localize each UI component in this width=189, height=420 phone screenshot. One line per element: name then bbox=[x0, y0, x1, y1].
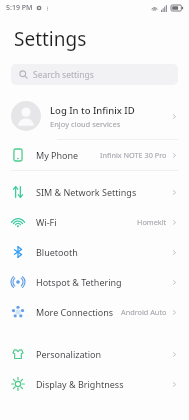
staticText: Enjoy cloud services bbox=[50, 119, 121, 129]
staticText: Bluetooth bbox=[36, 246, 78, 258]
staticText: Settings bbox=[14, 26, 87, 52]
staticText: Hotspot & Tethering bbox=[36, 276, 122, 288]
button[interactable]: My Phone bbox=[0, 140, 189, 170]
button[interactable]: Log In to Infinix ID bbox=[0, 93, 189, 139]
staticText: My Phone bbox=[36, 149, 79, 161]
button[interactable]: Hotspot & Tethering bbox=[0, 267, 189, 297]
button[interactable]: SIM & Network Settings bbox=[0, 177, 189, 207]
staticText: 5:19 PM bbox=[6, 3, 33, 13]
button[interactable]: More Connections bbox=[0, 297, 189, 327]
button[interactable]: Search settings bbox=[11, 64, 178, 85]
staticText: Android Auto bbox=[121, 307, 167, 317]
staticText: More Connections bbox=[36, 306, 114, 318]
staticText: Infinix NOTE 30 Pro bbox=[100, 150, 167, 160]
staticText: Homeklt bbox=[137, 217, 167, 227]
staticText: Search settings bbox=[33, 69, 94, 81]
staticText: SIM & Network Settings bbox=[36, 186, 137, 198]
staticText: Wi-Fi bbox=[36, 216, 57, 228]
staticText: Log In to Infinix ID bbox=[50, 104, 135, 117]
staticText: Personalization bbox=[36, 348, 102, 360]
button[interactable]: Bluetooth bbox=[0, 237, 189, 267]
button[interactable]: Display & Brightness bbox=[0, 369, 189, 399]
button[interactable]: Wi-Fi bbox=[0, 207, 189, 237]
staticText: Display & Brightness bbox=[36, 378, 124, 390]
button[interactable]: Personalization bbox=[0, 339, 189, 369]
